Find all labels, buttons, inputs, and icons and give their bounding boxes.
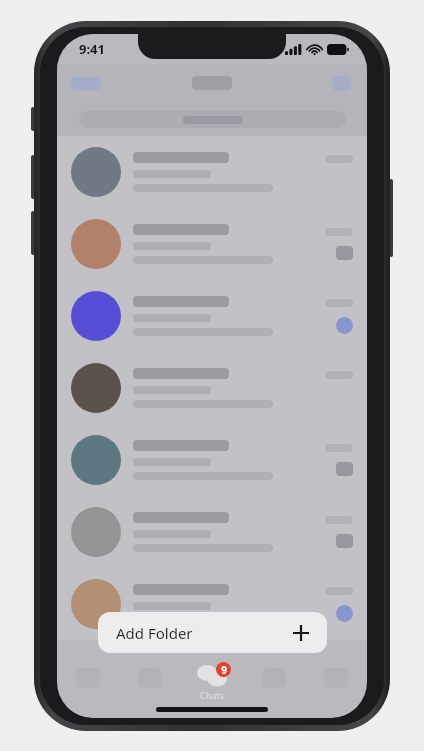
button[interactable] — [57, 424, 367, 496]
button[interactable] — [57, 496, 367, 568]
button[interactable]: Tab 2 — [119, 665, 181, 688]
button[interactable] — [57, 280, 367, 352]
staticText: Chats — [200, 689, 224, 701]
button[interactable]: Search — [79, 111, 346, 128]
button[interactable] — [57, 352, 367, 424]
button[interactable]: Tab 5 — [305, 665, 367, 688]
staticText: 9:41 — [79, 40, 105, 58]
button[interactable]: Tab 4 — [243, 665, 305, 688]
button[interactable]: 9 — [181, 665, 243, 701]
button[interactable] — [57, 568, 367, 640]
staticText: Add Folder — [116, 623, 193, 643]
button[interactable] — [57, 208, 367, 280]
button[interactable]: Add Folder — [98, 612, 327, 653]
button[interactable] — [57, 136, 367, 208]
button[interactable]: Tab 1 — [57, 665, 119, 688]
staticText: 9 — [221, 663, 227, 677]
